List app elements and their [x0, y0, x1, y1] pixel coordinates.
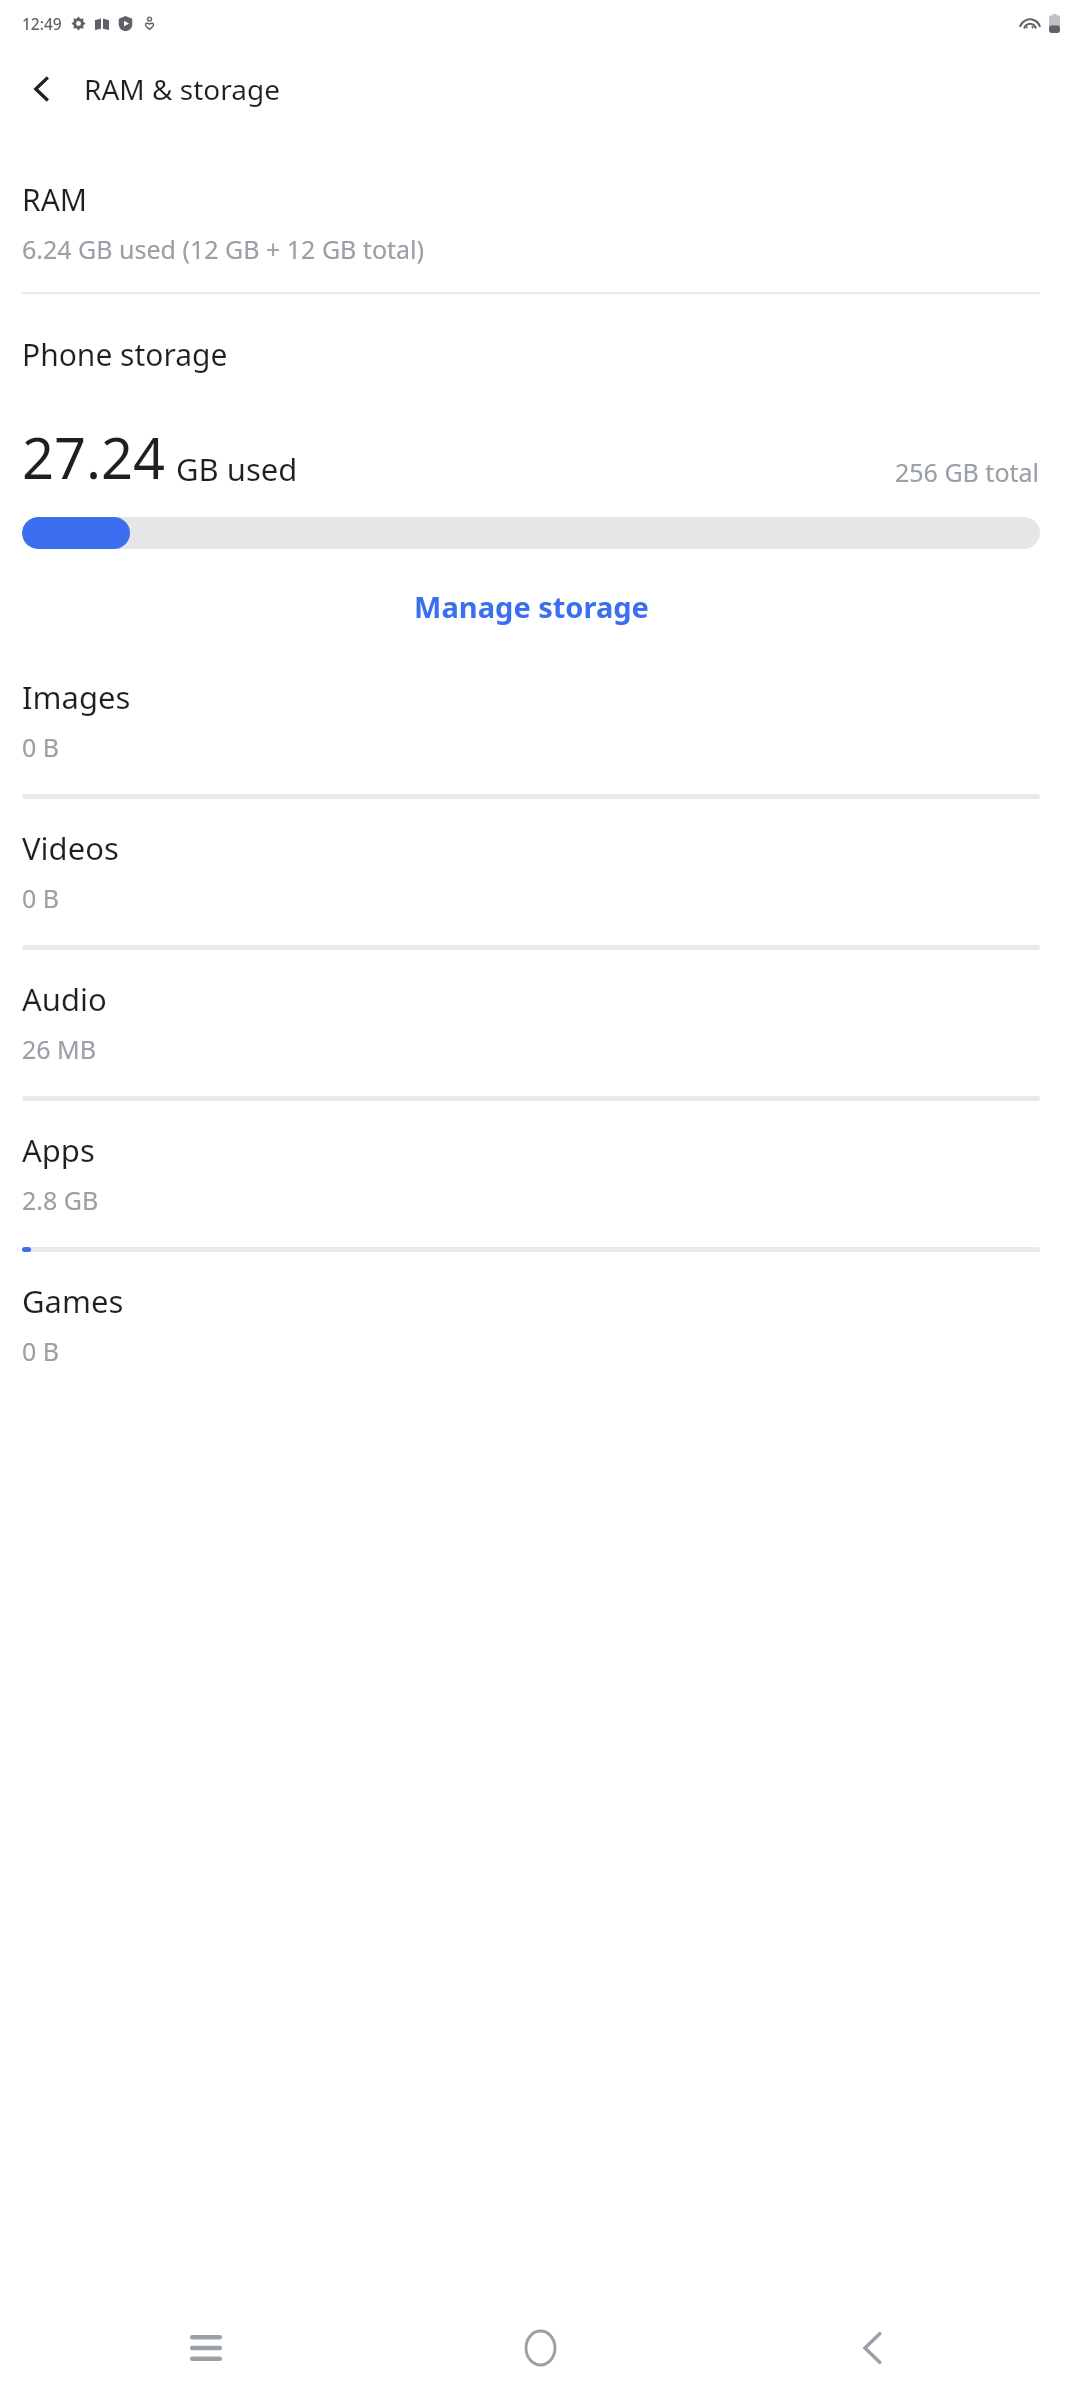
button[interactable]: Back	[844, 2320, 900, 2376]
staticText: Manage storage	[414, 587, 649, 626]
staticText: 6.24 GB used (12 GB + 12 GB total)	[22, 232, 425, 266]
button[interactable]: Home	[510, 2318, 570, 2378]
button[interactable]: Games	[0, 1280, 1080, 1368]
staticText: 0 B	[22, 881, 60, 915]
button[interactable]: Apps	[0, 1129, 1080, 1280]
button[interactable]: Back	[14, 61, 70, 117]
staticText: Apps	[22, 1129, 95, 1171]
staticText: 27.24	[22, 419, 166, 495]
staticText: 2.8 GB	[22, 1183, 99, 1217]
staticText: Audio	[22, 978, 107, 1020]
staticText: 0 B	[22, 730, 60, 764]
button[interactable]: Recent apps	[178, 2320, 234, 2376]
staticText: GB used	[176, 448, 298, 490]
staticText: 256 GB total	[895, 455, 1040, 489]
staticText: Images	[22, 676, 131, 718]
button[interactable]: Videos	[0, 827, 1080, 978]
staticText: 12:49	[22, 13, 62, 34]
staticText: 0 B	[22, 1334, 60, 1368]
staticText: RAM & storage	[84, 70, 280, 108]
staticText: Videos	[22, 827, 119, 869]
button[interactable]: RAM	[0, 179, 1080, 266]
button[interactable]: Audio	[0, 978, 1080, 1129]
staticText: 26 MB	[22, 1032, 97, 1066]
staticText: Games	[22, 1280, 124, 1322]
button[interactable]: Images	[0, 676, 1080, 827]
button[interactable]: Manage storage	[22, 587, 1040, 626]
staticText: Phone storage	[22, 334, 228, 375]
staticText: RAM	[22, 179, 88, 220]
